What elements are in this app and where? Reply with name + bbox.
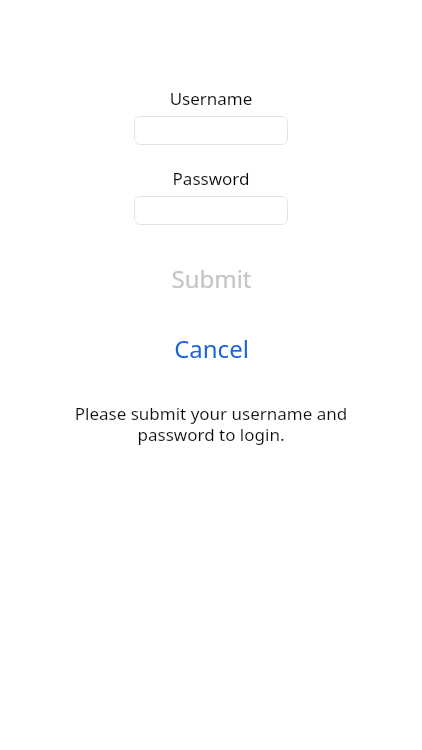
staticText: Cancel	[174, 332, 249, 365]
button[interactable]: Submit	[0, 261, 422, 295]
staticText: Submit	[171, 262, 252, 295]
staticText: Username	[0, 87, 422, 110]
button[interactable]: Cancel	[0, 331, 422, 365]
staticText: Password	[0, 167, 422, 190]
button[interactable]: Username	[134, 116, 288, 145]
button[interactable]: Password	[134, 196, 288, 225]
staticText: Please submit your username and password…	[74, 402, 348, 446]
